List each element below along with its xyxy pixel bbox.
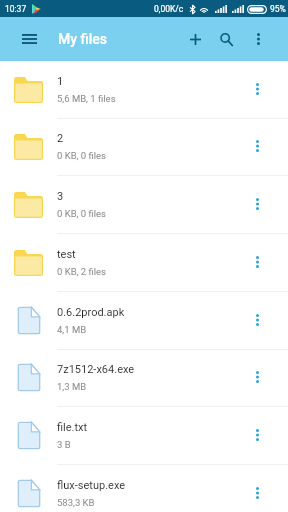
button[interactable]: 7z1512-x64.exe <box>0 349 288 407</box>
button[interactable]: Item options <box>227 235 288 291</box>
button[interactable]: Item options <box>227 119 288 175</box>
staticText: My files <box>58 31 108 47</box>
button[interactable]: Item options <box>227 293 288 349</box>
staticText: 5,6 MB, 1 files <box>57 93 116 104</box>
staticText: 3 B <box>57 439 71 450</box>
staticText: 1 <box>57 75 64 88</box>
staticText: 0 KB, 0 files <box>57 208 107 219</box>
button[interactable]: 3 <box>0 176 288 234</box>
staticText: 10:37 <box>5 4 27 14</box>
staticText: file.txt <box>57 421 88 434</box>
staticText: 7z1512-x64.exe <box>57 363 135 376</box>
staticText: flux-setup.exe <box>57 479 126 492</box>
staticText: 3 <box>57 190 64 203</box>
staticText: 1,3 MB <box>57 381 87 392</box>
button[interactable]: 2 <box>0 118 288 176</box>
staticText: 0 KB, 0 files <box>57 150 107 161</box>
staticText: 95% <box>270 4 286 14</box>
staticText: 583,3 KB <box>57 497 95 508</box>
button[interactable]: Item options <box>227 466 288 512</box>
button[interactable]: More options <box>243 24 273 54</box>
button[interactable]: test <box>0 234 288 292</box>
button[interactable]: 0.6.2prod.apk <box>0 292 288 350</box>
button[interactable]: Add <box>180 24 210 54</box>
button[interactable]: Search <box>211 24 241 54</box>
button[interactable]: flux-setup.exe <box>0 465 288 512</box>
button[interactable]: 1 <box>0 61 288 119</box>
button[interactable]: Item options <box>227 350 288 406</box>
staticText: test <box>57 248 76 261</box>
button[interactable]: Item options <box>227 408 288 464</box>
staticText: 0,00K/c <box>154 4 184 14</box>
button[interactable]: Navigation menu <box>16 26 42 52</box>
staticText: 2 <box>57 132 64 145</box>
staticText: 0 KB, 2 files <box>57 266 107 277</box>
button[interactable]: Item options <box>227 177 288 233</box>
button[interactable]: Item options <box>227 62 288 118</box>
staticText: 0.6.2prod.apk <box>57 306 125 319</box>
staticText: 4,1 MB <box>57 324 87 335</box>
button[interactable]: file.txt <box>0 407 288 465</box>
